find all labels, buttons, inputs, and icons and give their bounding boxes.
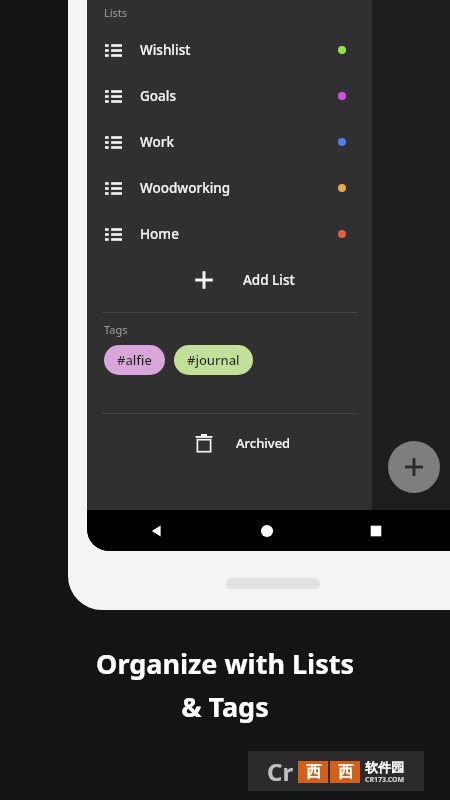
button[interactable]: Add List [87, 257, 372, 303]
staticText: Add List [243, 271, 295, 289]
staticText: Organize with Lists [96, 645, 354, 682]
button[interactable]: Home [259, 523, 275, 539]
staticText: 西 [338, 763, 353, 782]
staticText: Cr [267, 755, 294, 788]
button[interactable]: Recent apps [369, 524, 383, 538]
button[interactable]: Add note [388, 441, 440, 493]
staticText: #journal [187, 351, 240, 369]
staticText: #alfie [117, 351, 152, 369]
staticText: Goals [140, 87, 176, 105]
button[interactable]: Archived [87, 414, 372, 472]
button[interactable]: #journal [174, 345, 253, 375]
button[interactable]: Wishlist [87, 27, 372, 73]
staticText: 软件园 [365, 759, 404, 775]
staticText: Archived [236, 434, 291, 452]
button[interactable]: Woodworking [87, 165, 372, 211]
staticText: Wishlist [140, 41, 191, 59]
staticText: Woodworking [140, 179, 231, 197]
staticText: CR173.COM [365, 775, 405, 785]
staticText: 西 [306, 763, 321, 782]
staticText: Lists [104, 5, 128, 20]
button[interactable]: #alfie [104, 345, 165, 375]
staticText: & Tags [181, 688, 269, 725]
button[interactable]: Home [87, 211, 372, 257]
staticText: Home [140, 225, 179, 243]
button[interactable]: Goals [87, 73, 372, 119]
button[interactable]: Back [147, 521, 167, 541]
button[interactable]: Work [87, 119, 372, 165]
staticText: Work [140, 133, 174, 151]
staticText: Tags [104, 322, 128, 337]
